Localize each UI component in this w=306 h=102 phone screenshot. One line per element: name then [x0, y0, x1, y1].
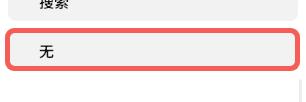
- staticText: 搜索: [39, 0, 70, 13]
- button[interactable]: 搜索: [8, 0, 298, 21]
- button[interactable]: 无: [10, 33, 295, 66]
- staticText: 无: [39, 40, 55, 62]
